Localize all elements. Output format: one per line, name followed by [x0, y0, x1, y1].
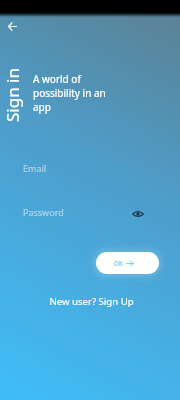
staticText: OK: [114, 259, 124, 268]
button[interactable]: Password: [14, 199, 166, 225]
staticText: Sign in: [1, 68, 24, 122]
button[interactable]: Toggle password visibility: [130, 206, 146, 222]
button[interactable]: Back: [4, 18, 20, 34]
button[interactable]: Email: [14, 155, 166, 181]
button[interactable]: OK: [96, 252, 159, 274]
button[interactable]: New user? Sign Up: [1, 293, 180, 309]
staticText: Email: [23, 162, 47, 174]
staticText: New user? Sign Up: [49, 295, 134, 308]
staticText: Password: [23, 206, 64, 218]
staticText: A world of possibility in an app: [33, 72, 109, 114]
